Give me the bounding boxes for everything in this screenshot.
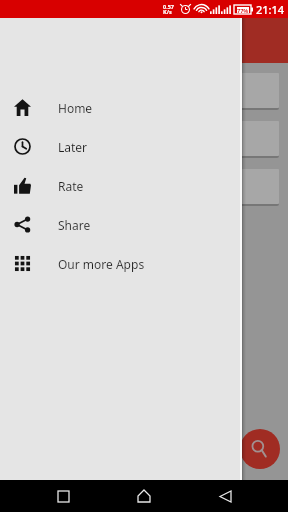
button[interactable]: Our more Apps xyxy=(0,244,242,283)
staticText: 21:14 xyxy=(256,2,285,17)
button[interactable]: Later xyxy=(0,127,242,166)
button[interactable] xyxy=(9,121,279,156)
button[interactable]: Search xyxy=(240,429,280,469)
button[interactable]: Back xyxy=(210,481,240,511)
staticText: 0.57 K/s xyxy=(163,3,174,16)
staticText: Rate xyxy=(58,178,84,194)
button[interactable] xyxy=(9,73,279,108)
staticText: Home xyxy=(58,100,93,116)
button[interactable]: Home xyxy=(0,88,242,127)
staticText: Share xyxy=(58,217,91,233)
button[interactable]: Share xyxy=(0,205,242,244)
staticText: Later xyxy=(58,139,88,155)
button[interactable]: Rate xyxy=(0,166,242,205)
button[interactable] xyxy=(9,169,279,204)
button[interactable]: Recents xyxy=(48,481,78,511)
staticText: Our more Apps xyxy=(58,256,145,272)
button[interactable]: Home xyxy=(129,481,159,511)
staticText: 77% xyxy=(237,7,249,13)
